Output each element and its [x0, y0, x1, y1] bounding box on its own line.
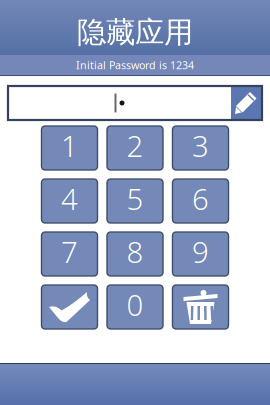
button[interactable]: Edit password — [231, 86, 262, 120]
button[interactable]: 1 — [41, 126, 97, 170]
button[interactable]: 9 — [172, 232, 228, 276]
staticText: 4 — [61, 179, 78, 218]
staticText: 7 — [61, 232, 78, 271]
staticText: 5 — [126, 179, 143, 218]
staticText: 隐藏应用 — [77, 14, 193, 50]
button[interactable]: Delete — [172, 285, 228, 329]
staticText: 8 — [126, 232, 143, 271]
button[interactable]: 6 — [172, 179, 228, 223]
staticText: Initial Password is 1234 — [76, 58, 194, 72]
staticText: 2 — [126, 126, 143, 165]
button[interactable]: 7 — [41, 232, 97, 276]
button[interactable]: Confirm — [41, 285, 97, 329]
staticText: 0 — [126, 285, 143, 324]
staticText: 6 — [192, 179, 209, 218]
staticText: 3 — [192, 126, 209, 165]
button[interactable]: 8 — [107, 232, 163, 276]
staticText: 1 — [61, 126, 78, 165]
staticText: 9 — [192, 232, 209, 271]
button[interactable]: 2 — [107, 126, 163, 170]
button[interactable]: 5 — [107, 179, 163, 223]
button[interactable]: 3 — [172, 126, 228, 170]
button[interactable]: 4 — [41, 179, 97, 223]
button[interactable]: 0 — [107, 285, 163, 329]
